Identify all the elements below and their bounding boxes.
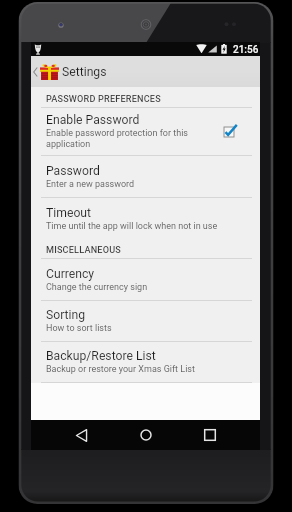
staticText: Enter a new password: [46, 179, 135, 190]
staticText: MISCELLANEOUS: [46, 245, 121, 256]
staticText: Backup or restore your Xmas Gift List: [46, 364, 195, 375]
staticText: Backup/Restore List: [46, 349, 156, 363]
staticText: Sorting: [46, 308, 86, 322]
button[interactable]: Password: [31, 156, 260, 197]
button[interactable]: Home: [131, 420, 161, 450]
staticText: Change the currency sign: [46, 282, 148, 293]
staticText: 21:56: [233, 44, 259, 56]
button[interactable]: Sorting: [31, 301, 260, 341]
button[interactable]: Recent apps: [195, 420, 225, 450]
button[interactable]: Timeout: [31, 198, 260, 239]
button[interactable]: Enable Password checkbox: [223, 123, 241, 141]
staticText: Password: [46, 164, 100, 178]
staticText: Timeout: [46, 206, 92, 220]
staticText: How to sort lists: [46, 323, 112, 334]
button[interactable]: Currency: [31, 259, 260, 300]
staticText: Settings: [62, 65, 107, 79]
button[interactable]: Backup/Restore List: [31, 342, 260, 382]
staticText: Currency: [46, 267, 95, 281]
staticText: Enable password protection for this appl…: [46, 128, 218, 150]
staticText: PASSWORD PREFERENCES: [46, 94, 161, 105]
button[interactable]: Back: [66, 420, 96, 450]
staticText: Time until the app will lock when not in…: [46, 221, 218, 232]
button[interactable]: Navigate up: [32, 62, 39, 82]
staticText: Enable Password: [46, 113, 140, 127]
button[interactable]: Enable Password: [31, 108, 260, 155]
